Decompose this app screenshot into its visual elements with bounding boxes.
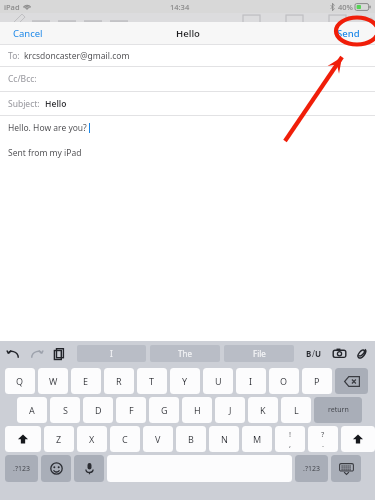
button[interactable]: Send bbox=[334, 24, 363, 43]
button[interactable]: Emoji bbox=[41, 455, 71, 482]
staticText: O bbox=[280, 375, 288, 387]
staticText: U bbox=[215, 375, 222, 387]
button[interactable]: File bbox=[224, 345, 294, 362]
staticText: B bbox=[188, 433, 194, 445]
button[interactable]: Paste bbox=[52, 346, 67, 361]
staticText: return bbox=[328, 405, 349, 415]
staticText: D bbox=[95, 404, 102, 416]
staticText: ? bbox=[321, 429, 325, 439]
button[interactable]: K bbox=[248, 397, 278, 423]
button[interactable]: Redo bbox=[29, 346, 44, 361]
button[interactable]: N bbox=[209, 426, 239, 452]
button[interactable]: ! bbox=[275, 426, 305, 452]
staticText: F bbox=[129, 404, 134, 416]
staticText: 14:34 bbox=[170, 2, 190, 12]
button[interactable]: Shift bbox=[5, 426, 41, 452]
staticText: Y bbox=[182, 375, 188, 387]
button[interactable]: Backspace bbox=[335, 368, 368, 394]
button[interactable]: B bbox=[304, 348, 324, 359]
staticText: Z bbox=[56, 433, 62, 445]
staticText: N bbox=[221, 433, 228, 445]
button[interactable]: P bbox=[302, 368, 332, 394]
staticText: I bbox=[249, 375, 253, 387]
button[interactable]: The bbox=[150, 345, 220, 362]
button[interactable]: M bbox=[242, 426, 272, 452]
button[interactable]: B bbox=[176, 426, 206, 452]
staticText: File bbox=[253, 348, 266, 359]
button[interactable]: A bbox=[17, 397, 47, 423]
staticText: M bbox=[253, 433, 262, 445]
staticText: Hello bbox=[176, 27, 200, 40]
staticText: T bbox=[149, 375, 155, 387]
button[interactable]: Z bbox=[44, 426, 74, 452]
staticText: C bbox=[122, 433, 128, 445]
staticText: J bbox=[229, 404, 232, 416]
button[interactable]: return bbox=[314, 397, 362, 423]
button[interactable]: O bbox=[269, 368, 299, 394]
staticText: E bbox=[83, 375, 89, 387]
staticText: Hello bbox=[45, 98, 67, 110]
button[interactable]: W bbox=[38, 368, 68, 394]
staticText: krcsdoncaster@gmail.com bbox=[24, 50, 130, 62]
staticText: V bbox=[155, 433, 161, 445]
staticText: U bbox=[315, 348, 322, 359]
staticText: / bbox=[312, 348, 315, 359]
staticText: H bbox=[194, 404, 201, 416]
button[interactable]: Y bbox=[170, 368, 200, 394]
button[interactable]: J bbox=[215, 397, 245, 423]
staticText: ! bbox=[289, 429, 292, 439]
button[interactable]: S bbox=[50, 397, 80, 423]
staticText: S bbox=[63, 404, 68, 416]
button[interactable]: .?123 bbox=[5, 455, 38, 482]
button[interactable]: Cc/Bcc: bbox=[0, 67, 375, 91]
staticText: To: bbox=[8, 50, 20, 62]
staticText: B bbox=[306, 348, 312, 359]
button[interactable]: Cancel bbox=[10, 24, 46, 43]
staticText: Cc/Bcc: bbox=[8, 73, 37, 85]
staticText: Subject: bbox=[8, 98, 40, 110]
staticText: K bbox=[260, 404, 266, 416]
button[interactable]: Subject: bbox=[0, 92, 375, 115]
button[interactable]: Attach bbox=[354, 346, 369, 361]
staticText: . bbox=[322, 439, 325, 449]
staticText: Cancel bbox=[13, 27, 43, 40]
button[interactable]: H bbox=[182, 397, 212, 423]
button[interactable]: Dictation bbox=[74, 455, 104, 482]
button[interactable]: E bbox=[71, 368, 101, 394]
button[interactable]: I bbox=[236, 368, 266, 394]
button[interactable]: Q bbox=[5, 368, 35, 394]
staticText: G bbox=[161, 404, 168, 416]
staticText: Q bbox=[16, 375, 24, 387]
button[interactable]: R bbox=[104, 368, 134, 394]
button[interactable]: T bbox=[137, 368, 167, 394]
button[interactable]: .?123 bbox=[295, 455, 328, 482]
button[interactable]: Shift bbox=[341, 426, 375, 452]
button[interactable]: ? bbox=[308, 426, 338, 452]
button[interactable]: To: bbox=[0, 45, 375, 66]
button[interactable]: U bbox=[203, 368, 233, 394]
staticText: A bbox=[29, 404, 35, 416]
staticText: 40% bbox=[338, 2, 353, 12]
staticText: iPad bbox=[4, 2, 20, 12]
staticText: R bbox=[116, 375, 122, 387]
button[interactable]: F bbox=[116, 397, 146, 423]
staticText: , bbox=[289, 439, 292, 449]
button[interactable]: D bbox=[83, 397, 113, 423]
button[interactable]: C bbox=[110, 426, 140, 452]
staticText: .?123 bbox=[303, 464, 320, 474]
button[interactable]: Camera bbox=[332, 346, 347, 361]
staticText: The bbox=[178, 348, 192, 359]
staticText: P bbox=[314, 375, 320, 387]
staticText: I bbox=[110, 348, 113, 359]
button[interactable]: V bbox=[143, 426, 173, 452]
button[interactable]: X bbox=[77, 426, 107, 452]
button[interactable]: G bbox=[149, 397, 179, 423]
staticText: .?123 bbox=[13, 464, 30, 474]
button[interactable]: Undo bbox=[6, 346, 21, 361]
staticText: L bbox=[294, 404, 299, 416]
button[interactable]: L bbox=[281, 397, 311, 423]
button[interactable]: I bbox=[77, 345, 146, 362]
button[interactable]: Hide keyboard bbox=[331, 455, 361, 482]
staticText: Sent from my iPad bbox=[8, 147, 82, 159]
